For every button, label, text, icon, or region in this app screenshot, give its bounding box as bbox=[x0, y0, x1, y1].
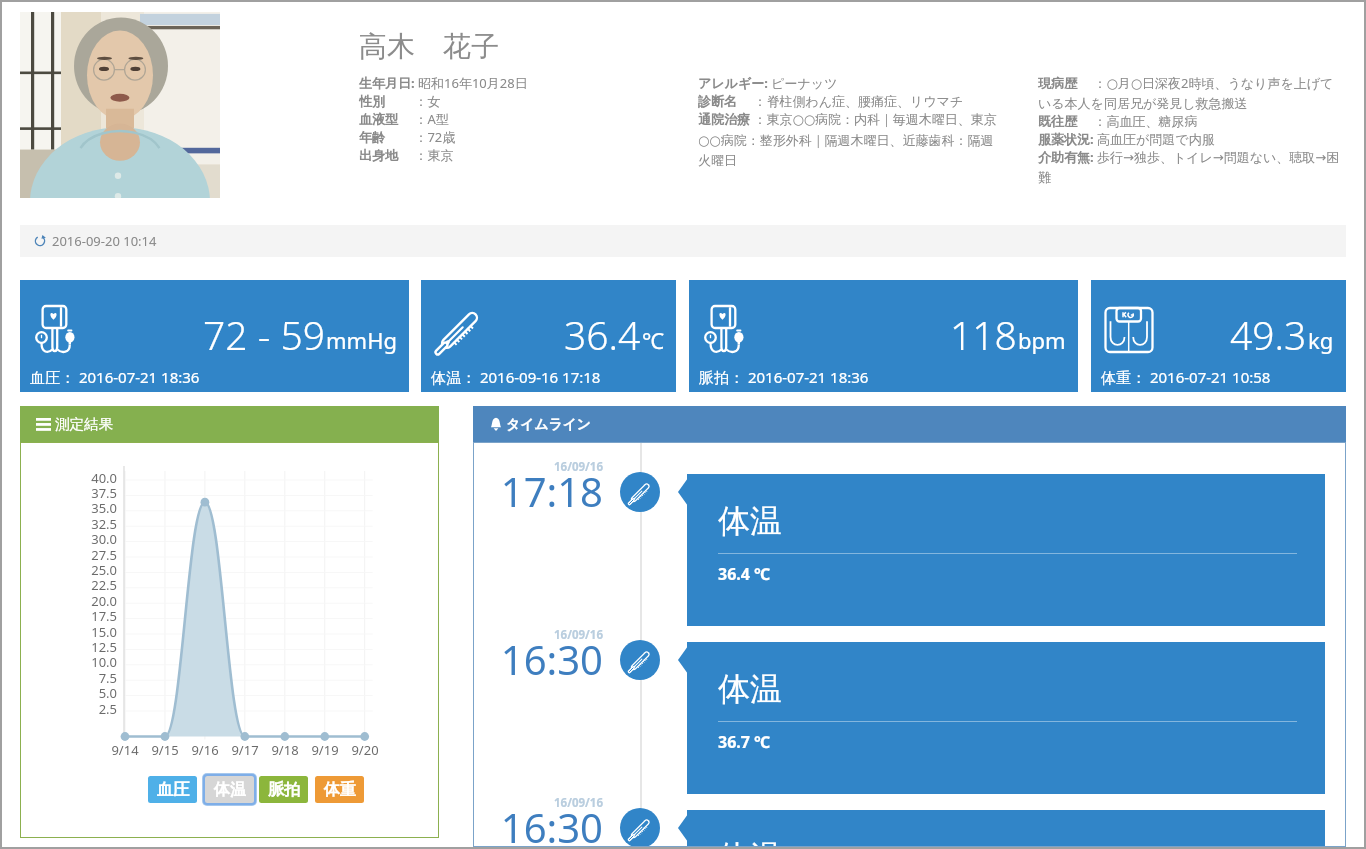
button[interactable]: 体温 bbox=[687, 810, 1325, 847]
staticText: 9/15 bbox=[151, 741, 179, 757]
staticText: 体温 bbox=[214, 780, 246, 800]
button[interactable]: 体温 bbox=[620, 472, 660, 512]
staticText: 17:18 bbox=[500, 464, 603, 508]
staticText: 生年月日: 昭和16年10月28日 bbox=[359, 74, 689, 92]
button[interactable]: 体温 bbox=[687, 642, 1325, 794]
staticText: 36.4 bbox=[564, 308, 641, 361]
staticText: 22.5 bbox=[91, 576, 117, 592]
button[interactable]: タイムライン bbox=[473, 406, 1346, 442]
staticText: 2016-09-20 10:14 bbox=[52, 232, 157, 250]
staticText: 16/09/16 bbox=[553, 627, 603, 643]
staticText: 9/18 bbox=[271, 741, 299, 757]
staticText: 37.5 bbox=[91, 484, 117, 500]
staticText: bpm bbox=[1018, 325, 1066, 355]
staticText: 16:30 bbox=[500, 800, 603, 844]
staticText: 16:30 bbox=[500, 632, 603, 676]
staticText: 30.0 bbox=[91, 530, 117, 546]
staticText: 出身地 ：東京 bbox=[359, 146, 689, 164]
staticText: 9/19 bbox=[311, 741, 339, 757]
staticText: 9/20 bbox=[351, 741, 379, 757]
staticText: 脈拍： 2016-07-21 18:36 bbox=[699, 367, 869, 387]
button[interactable]: 体重 bbox=[315, 776, 364, 803]
staticText: 118 bbox=[950, 308, 1017, 361]
staticText: 性別 ：女 bbox=[359, 92, 689, 110]
other: Refresh bbox=[34, 235, 46, 247]
button[interactable]: 72 - 59 bbox=[20, 280, 409, 392]
staticText: 体温： 2016-09-16 17:18 bbox=[431, 367, 601, 387]
staticText: 診断名 ：脊柱側わん症、腰痛症、リウマチ bbox=[698, 92, 998, 110]
staticText: 血圧 bbox=[157, 780, 189, 800]
staticText: ℃ bbox=[642, 325, 664, 355]
staticText: 9/14 bbox=[111, 741, 139, 757]
staticText: 5.0 bbox=[98, 684, 117, 700]
staticText: 16/09/16 bbox=[553, 459, 603, 475]
button[interactable]: 脈拍 bbox=[259, 776, 308, 803]
staticText: 9/16 bbox=[191, 741, 219, 757]
staticText: 16/09/16 bbox=[553, 795, 603, 811]
staticText: 20.0 bbox=[91, 592, 117, 608]
staticText: アレルギー: ピーナッツ bbox=[698, 74, 998, 92]
staticText: 体温 bbox=[718, 501, 782, 541]
staticText: 17.5 bbox=[91, 607, 117, 623]
staticText: 既往歴 ：高血圧、糖尿病 bbox=[1038, 112, 1343, 130]
staticText: 10.0 bbox=[91, 653, 117, 669]
staticText: 脈拍 bbox=[268, 780, 300, 800]
button[interactable]: 測定結果 bbox=[20, 406, 439, 442]
staticText: 12.5 bbox=[91, 638, 117, 654]
staticText: 血圧： 2016-07-21 18:36 bbox=[30, 367, 200, 387]
staticText: 体温 bbox=[718, 837, 782, 847]
staticText: 血液型 ：A型 bbox=[359, 110, 689, 128]
staticText: 体重 bbox=[324, 780, 356, 800]
staticText: 体温 bbox=[718, 669, 782, 709]
staticText: 測定結果 bbox=[55, 415, 113, 433]
staticText: 7.5 bbox=[98, 669, 117, 685]
staticText: 体重： 2016-07-21 10:58 bbox=[1101, 367, 1271, 387]
staticText: 15.0 bbox=[91, 623, 117, 639]
staticText: 服薬状況: 高血圧が問題で内服 bbox=[1038, 130, 1343, 148]
staticText: 25.0 bbox=[91, 561, 117, 577]
button[interactable]: 血圧 bbox=[148, 776, 197, 803]
staticText: 36.4 ℃ bbox=[718, 563, 771, 585]
staticText: 高木 花子 bbox=[359, 26, 499, 64]
staticText: 40.0 bbox=[91, 469, 117, 485]
button[interactable]: 36.4 bbox=[421, 280, 676, 392]
staticText: 介助有無: 歩行→独歩、トイレ→問題ない、聴取→困難 bbox=[1038, 148, 1343, 186]
button[interactable]: 体温 bbox=[205, 776, 254, 803]
staticText: 49.3 bbox=[1230, 308, 1307, 361]
button[interactable]: Refresh bbox=[20, 225, 1346, 257]
button[interactable]: 体温 bbox=[620, 808, 660, 847]
staticText: 27.5 bbox=[91, 546, 117, 562]
button[interactable]: 49.3 bbox=[1091, 280, 1346, 392]
staticText: タイムライン bbox=[506, 416, 591, 433]
staticText: 9/17 bbox=[231, 741, 259, 757]
staticText: 35.0 bbox=[91, 499, 117, 515]
button[interactable]: 118 bbox=[689, 280, 1078, 392]
staticText: 32.5 bbox=[91, 515, 117, 531]
staticText: 年齢 ：72歳 bbox=[359, 128, 689, 146]
staticText: 72 - 59 bbox=[203, 308, 325, 361]
staticText: 36.7 ℃ bbox=[718, 731, 771, 753]
staticText: 通院治療 ：東京○○病院：内科｜毎週木曜日、東京○○病院：整形外科｜隔週木曜日、… bbox=[698, 110, 998, 169]
staticText: kg bbox=[1308, 325, 1334, 355]
button[interactable]: 体温 bbox=[620, 640, 660, 680]
staticText: mmHg bbox=[326, 325, 397, 355]
staticText: 2.5 bbox=[98, 700, 117, 716]
staticText: 現病歴 ：○月○日深夜2時頃、うなり声を上げている本人を同居兄が発見し救急搬送 bbox=[1038, 74, 1343, 112]
button[interactable]: 体温 bbox=[687, 474, 1325, 626]
